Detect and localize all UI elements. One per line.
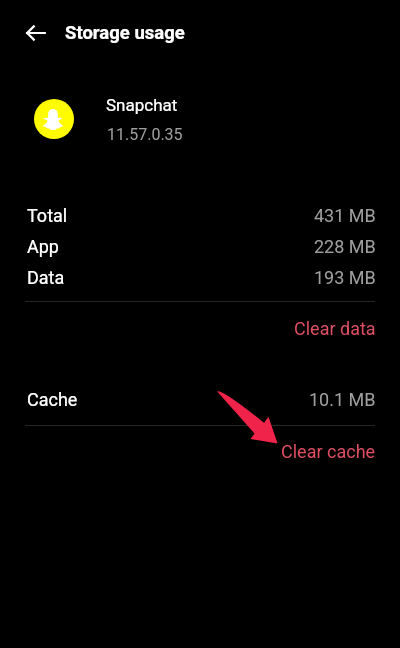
staticText: Data xyxy=(27,267,65,288)
button[interactable]: Data xyxy=(0,262,400,293)
staticText: 10.1 MB xyxy=(309,389,376,410)
button[interactable]: Cache xyxy=(0,384,400,415)
button[interactable] xyxy=(0,92,400,146)
staticText: Total xyxy=(27,205,68,226)
staticText: 228 MB xyxy=(314,236,376,257)
button[interactable]: Total xyxy=(0,200,400,231)
staticText: Clear data xyxy=(294,318,376,339)
staticText: 431 MB xyxy=(314,205,376,226)
staticText: Cache xyxy=(27,389,78,410)
staticText: 193 MB xyxy=(314,267,376,288)
button[interactable]: Back xyxy=(15,12,57,54)
staticText: 11.57.0.35 xyxy=(107,125,183,144)
button[interactable]: Clear cache xyxy=(0,434,400,468)
staticText: Clear cache xyxy=(281,441,376,462)
button[interactable]: Clear data xyxy=(0,311,400,345)
button[interactable]: App xyxy=(0,231,400,262)
staticText: Snapchat xyxy=(106,95,178,115)
staticText: App xyxy=(27,236,59,257)
staticText: Storage usage xyxy=(65,22,185,44)
